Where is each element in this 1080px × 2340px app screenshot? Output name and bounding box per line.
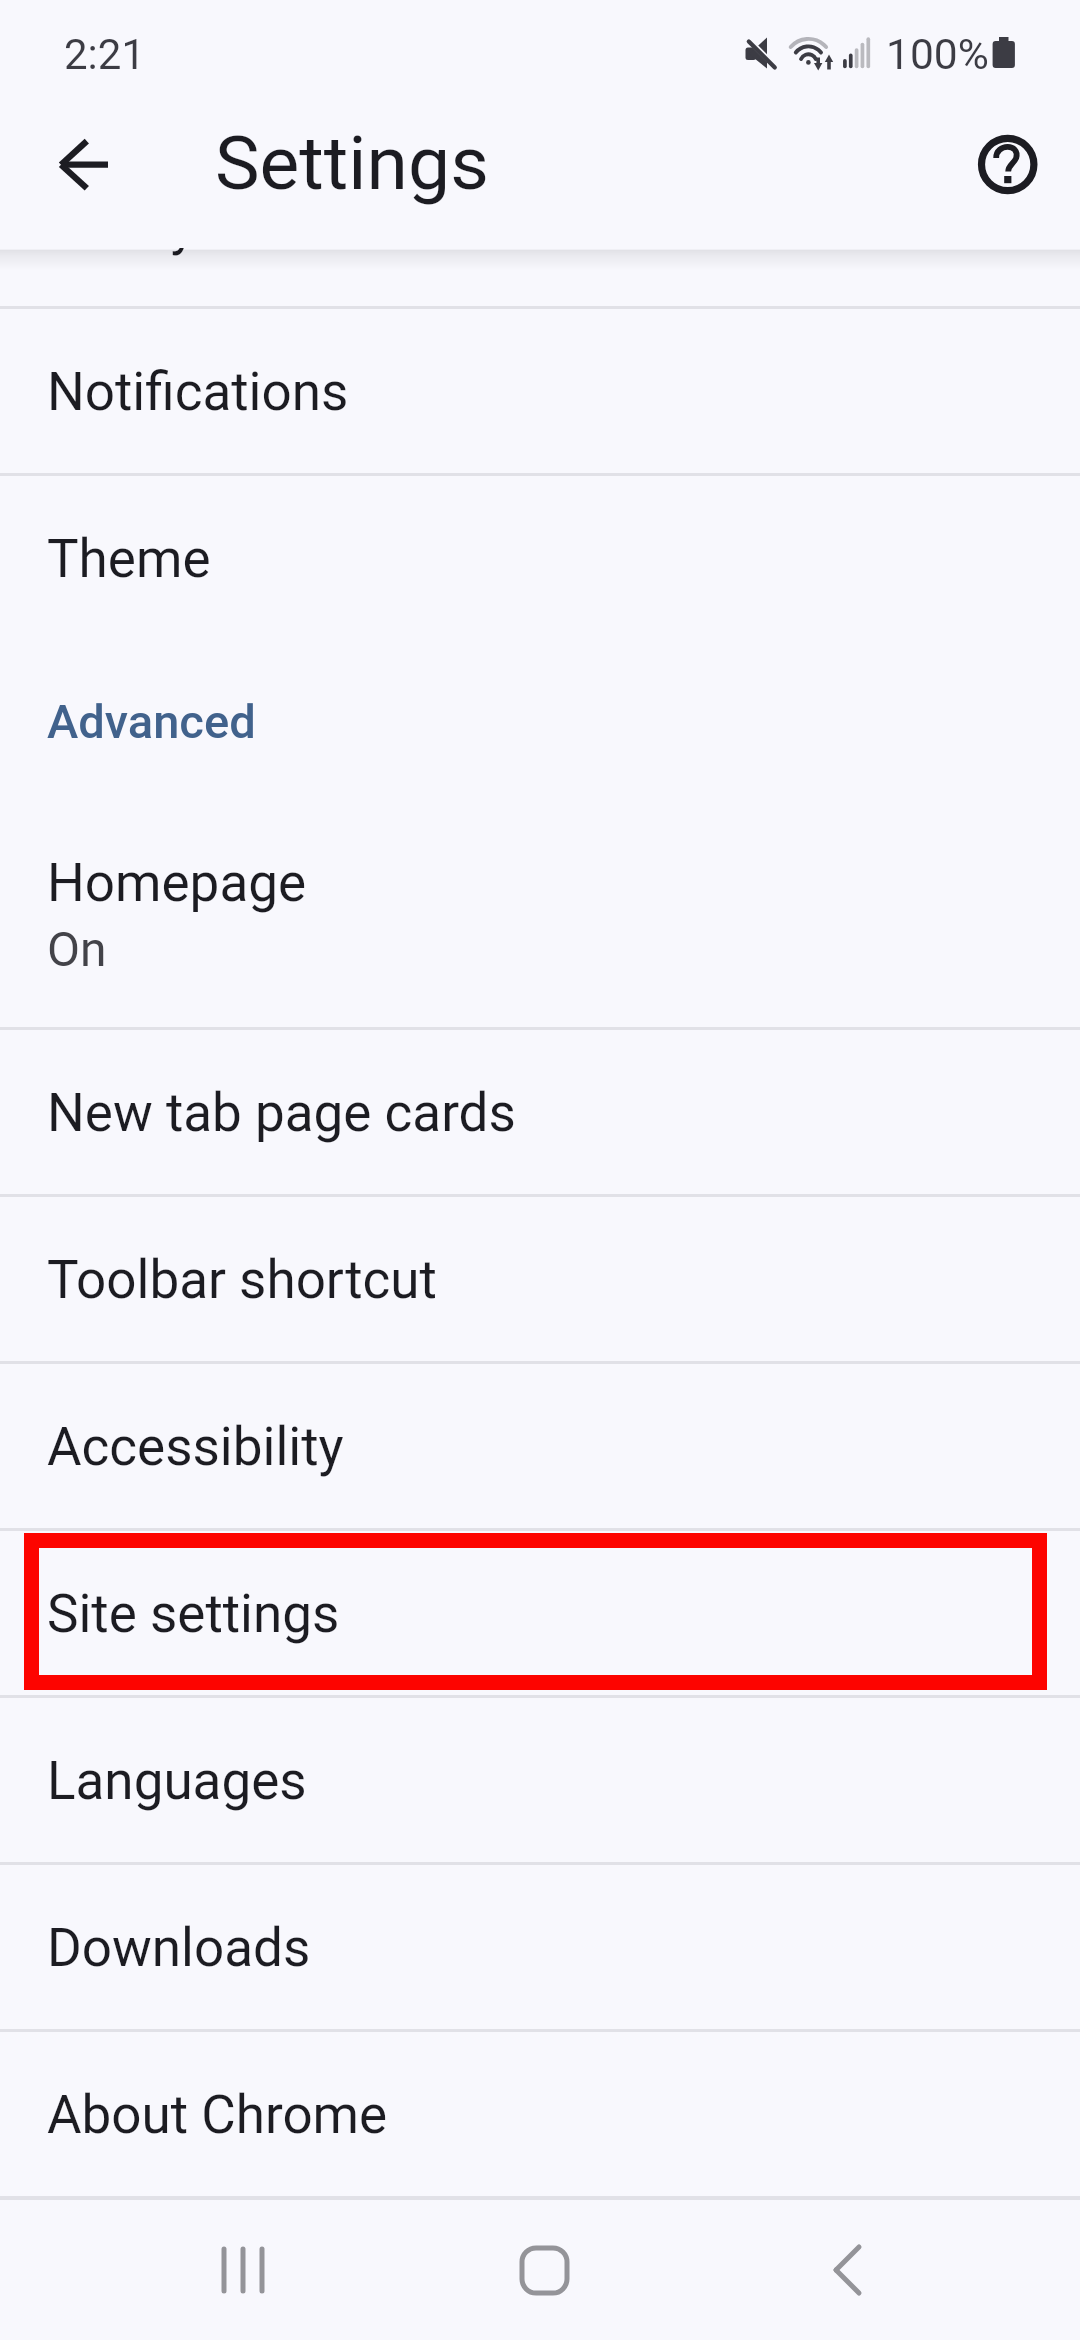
button[interactable]: Toolbar shortcut — [0, 1197, 1080, 1361]
button[interactable]: Theme — [0, 476, 1080, 640]
button[interactable]: Help — [956, 112, 1060, 216]
button[interactable]: Back — [787, 2197, 907, 2340]
staticText: Advanced — [47, 694, 256, 749]
button[interactable]: Site settings — [0, 1531, 1080, 1695]
button[interactable]: Recent apps — [183, 2197, 303, 2340]
button[interactable]: Notifications — [0, 309, 1080, 473]
button[interactable]: Homepage — [0, 798, 1080, 1027]
staticText: Toolbar shortcut — [47, 1249, 437, 1311]
button[interactable]: Home — [484, 2197, 604, 2340]
staticText: Languages — [47, 1750, 307, 1812]
staticText: Theme — [47, 528, 211, 590]
staticText: Notifications — [47, 361, 349, 423]
staticText: New tab page cards — [47, 1082, 516, 1144]
staticText: Settings — [215, 119, 489, 207]
staticText: 2:21 — [64, 30, 145, 79]
button[interactable]: About Chrome — [0, 2032, 1080, 2196]
button[interactable]: Accessibility — [0, 1364, 1080, 1528]
button[interactable]: Languages — [0, 1698, 1080, 1862]
button[interactable]: New tab page cards — [0, 1030, 1080, 1194]
staticText: Homepage — [47, 852, 307, 914]
staticText: 100% — [886, 30, 989, 80]
staticText: Accessibility — [47, 1416, 344, 1478]
button[interactable]: Back — [32, 113, 136, 217]
staticText: About Chrome — [47, 2084, 388, 2146]
staticText: On — [47, 921, 107, 977]
staticText: Safety check — [47, 195, 349, 257]
staticText: Downloads — [47, 1917, 311, 1979]
staticText: Site settings — [47, 1583, 340, 1645]
button[interactable]: Downloads — [0, 1865, 1080, 2029]
